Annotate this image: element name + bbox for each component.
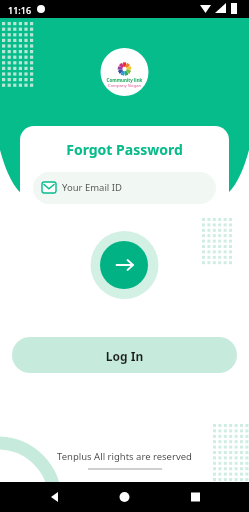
staticText: Tenplus All rights are reserved — [0, 450, 249, 512]
staticText: 11:16 — [8, 4, 32, 16]
button[interactable]: Forgot Password — [20, 140, 229, 160]
button[interactable]: Submit — [100, 241, 148, 289]
staticText: Log In — [12, 348, 237, 373]
button[interactable] — [33, 172, 216, 204]
staticText: Your Email ID — [62, 181, 122, 194]
button[interactable]: Log In — [12, 337, 237, 373]
staticText: Company Slogan — [104, 83, 145, 89]
staticText: Community link — [104, 77, 145, 83]
